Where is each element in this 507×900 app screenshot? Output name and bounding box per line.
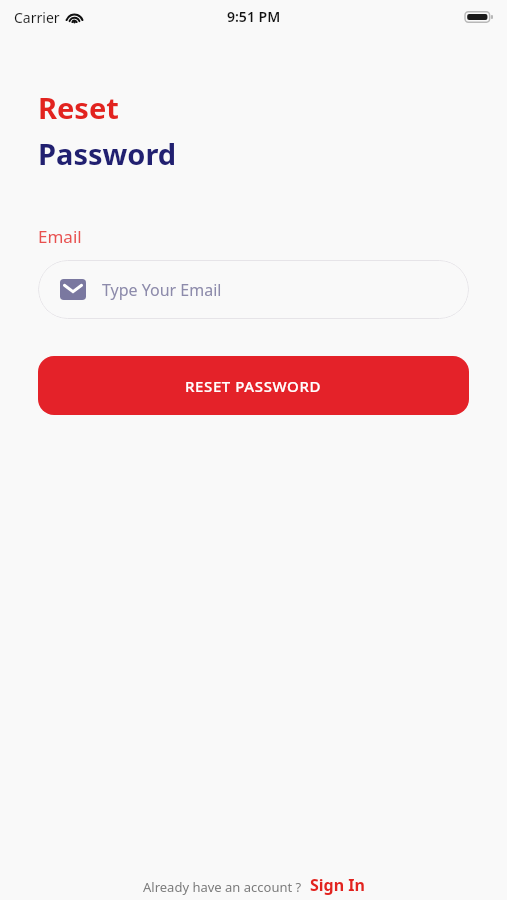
- staticText: Carrier: [14, 8, 60, 27]
- button[interactable]: RESET PASSWORD: [38, 356, 469, 415]
- staticText: Password: [38, 134, 177, 173]
- staticText: Reset: [38, 88, 119, 127]
- staticText: 9:51 PM: [227, 7, 281, 26]
- other: Email: [60, 279, 86, 300]
- staticText: Already have an account ?: [143, 878, 302, 896]
- staticText: Sign In: [310, 874, 365, 896]
- button[interactable]: Email: [38, 260, 469, 319]
- staticText: Email: [38, 225, 82, 248]
- button[interactable]: Sign In: [310, 874, 365, 896]
- staticText: Type Your Email: [102, 279, 222, 301]
- staticText: RESET PASSWORD: [185, 376, 322, 396]
